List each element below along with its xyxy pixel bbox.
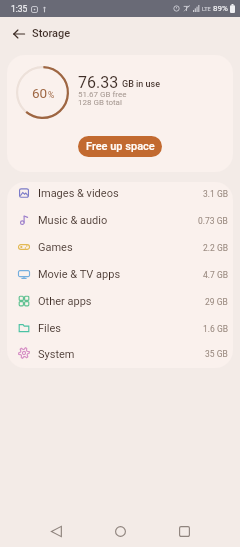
- staticText: 89%: [213, 4, 228, 13]
- staticText: 76.33: [78, 73, 119, 92]
- button[interactable]: Files: [7, 317, 233, 344]
- button[interactable]: Other apps: [7, 290, 233, 317]
- staticText: Music & audio: [38, 214, 108, 227]
- button[interactable]: System: [7, 344, 233, 368]
- staticText: %: [48, 90, 55, 100]
- staticText: 128 GB total: [78, 98, 122, 107]
- staticText: 60: [32, 85, 48, 101]
- staticText: Movie & TV apps: [38, 268, 121, 281]
- staticText: 4.7 GB: [203, 270, 228, 280]
- staticText: 3.1 GB: [203, 189, 228, 199]
- staticText: Games: [38, 241, 73, 254]
- button[interactable]: Back: [40, 516, 72, 547]
- staticText: 29 GB: [205, 297, 228, 307]
- button[interactable]: Games: [7, 236, 233, 263]
- button[interactable]: Home: [104, 516, 136, 547]
- staticText: Free up space: [86, 140, 155, 153]
- staticText: 35 GB: [205, 349, 228, 359]
- staticText: 2.2 GB: [203, 243, 228, 253]
- staticText: GB in use: [122, 79, 161, 90]
- staticText: 51.67 GB free: [78, 90, 127, 99]
- button[interactable]: Movie & TV apps: [7, 263, 233, 290]
- button[interactable]: Music & audio: [7, 209, 233, 236]
- button[interactable]: Free up space: [78, 136, 162, 157]
- staticText: Images & videos: [38, 187, 119, 200]
- button[interactable]: Images & videos: [7, 182, 233, 209]
- staticText: Other apps: [38, 295, 92, 308]
- staticText: LTE: [202, 6, 211, 12]
- button[interactable]: Recent apps: [168, 516, 200, 547]
- staticText: 1.6 GB: [203, 324, 228, 334]
- staticText: Files: [38, 322, 61, 335]
- button[interactable]: Back: [7, 22, 30, 45]
- staticText: 1:35: [11, 4, 28, 14]
- staticText: Storage: [32, 27, 71, 40]
- staticText: System: [38, 348, 75, 361]
- staticText: 0.73 GB: [198, 216, 228, 226]
